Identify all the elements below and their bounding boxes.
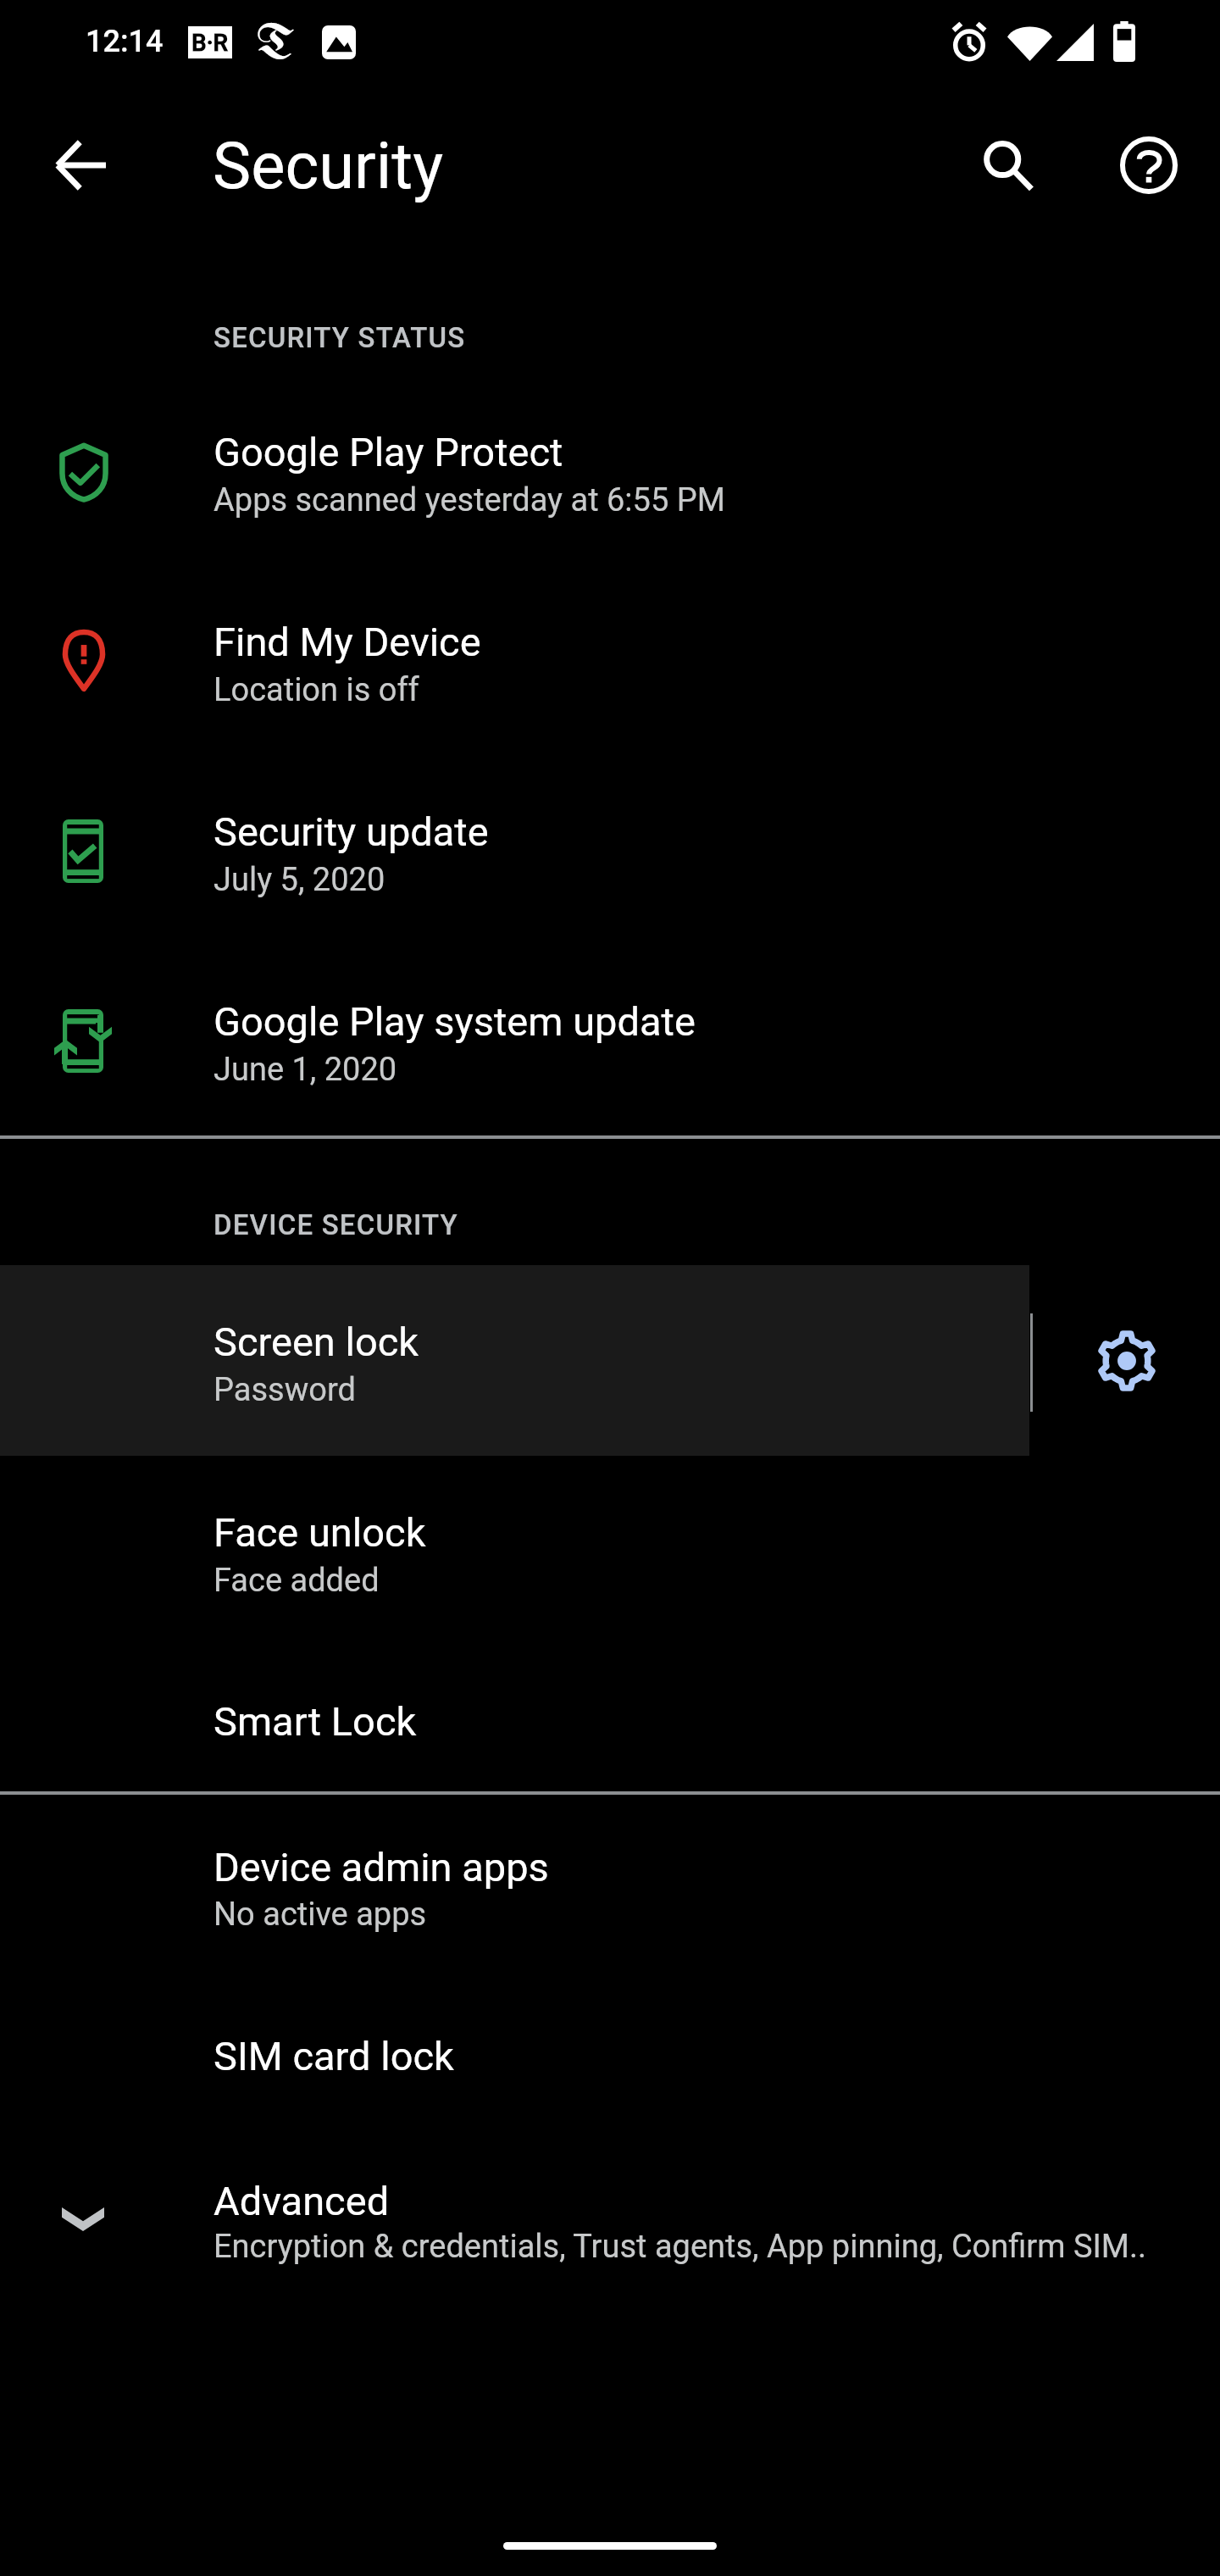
staticText: Location is off [213,671,419,709]
staticText: SECURITY STATUS [213,321,466,354]
staticText: No active apps [213,1896,427,1934]
button[interactable] [0,1795,1220,1985]
staticText: Security [213,128,444,203]
button[interactable] [0,1456,1220,1646]
staticText: June 1, 2020 [213,1051,397,1089]
staticText: July 5, 2020 [213,861,385,899]
button[interactable]: Help [1108,125,1189,206]
staticText: Face added [213,1562,380,1600]
button[interactable] [0,2127,1220,2313]
button[interactable] [0,755,1220,945]
staticText: Face unlock [213,1509,426,1556]
staticText: Screen lock [213,1319,419,1365]
button[interactable] [0,1646,1220,1792]
button[interactable]: Navigate up [41,125,122,206]
button[interactable] [0,375,1220,565]
staticText: Apps scanned yesterday at 6:55 PM [213,481,725,519]
staticText: Encryption & credentials, Trust agents, … [213,2228,1147,2266]
staticText: Device admin apps [213,1844,549,1890]
staticText: SIM card lock [213,2033,454,2079]
staticText: T [257,19,295,71]
staticText: Password [213,1371,356,1409]
button[interactable]: Screen lock settings [1033,1265,1220,1456]
button[interactable] [0,1265,1029,1456]
staticText: Google Play system update [213,998,696,1045]
button[interactable] [0,565,1220,755]
staticText: B·R [191,29,229,57]
staticText: 12:14 [86,24,164,59]
button[interactable] [0,945,1220,1135]
staticText: Advanced [213,2178,390,2224]
staticText: Smart Lock [213,1698,417,1745]
button[interactable]: Search [967,125,1048,206]
staticText: Google Play Protect [213,429,563,475]
staticText: Find My Device [213,619,481,665]
staticText: DEVICE SECURITY [213,1208,458,1241]
staticText: Security update [213,808,489,855]
button[interactable] [0,1985,1220,2127]
